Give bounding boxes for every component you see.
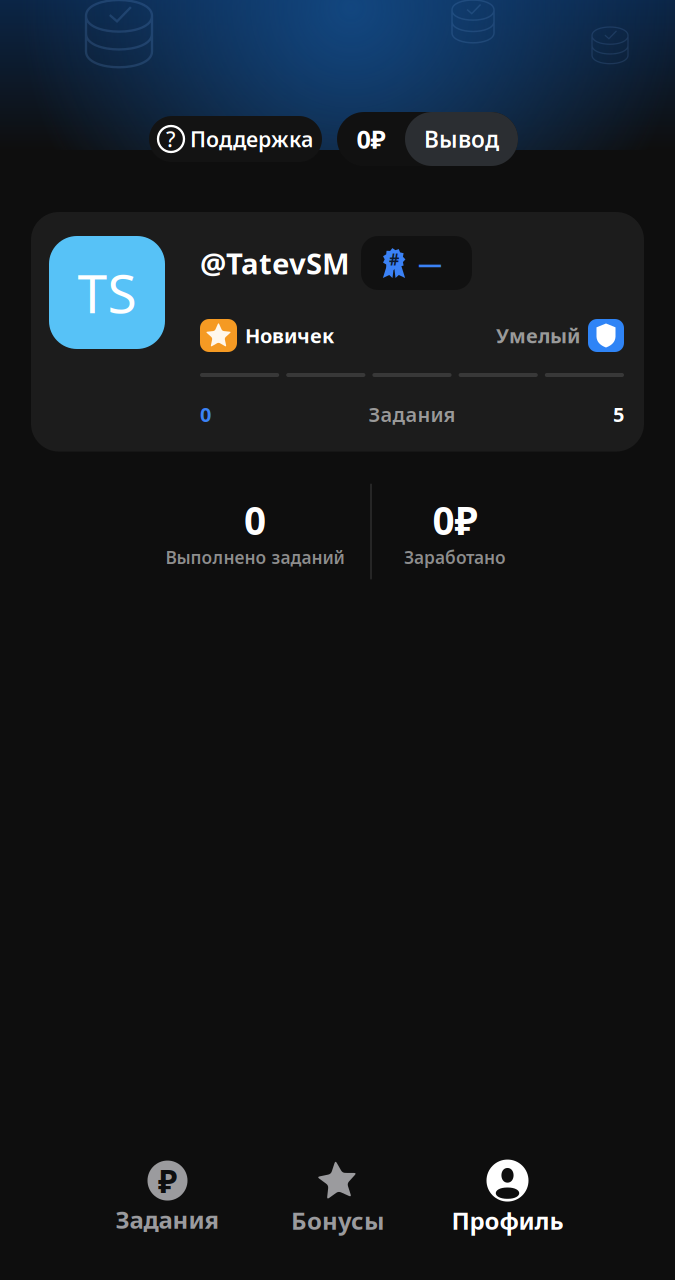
staticText: 0 xyxy=(200,401,211,428)
staticText: Бонусы xyxy=(291,1205,384,1236)
staticText: Выполнено заданий xyxy=(165,546,344,569)
staticText: @TatevSM xyxy=(200,243,350,282)
staticText: TS xyxy=(77,257,136,328)
staticText: Заработано xyxy=(404,546,506,569)
button[interactable]: Профиль xyxy=(422,1164,592,1232)
staticText: Задания xyxy=(115,1204,219,1235)
button[interactable]: Бонусы xyxy=(252,1164,422,1232)
staticText: Профиль xyxy=(451,1205,563,1236)
staticText: ₽ xyxy=(158,1159,177,1202)
staticText: 0₽ xyxy=(356,122,385,156)
staticText: # xyxy=(389,249,399,270)
staticText: — xyxy=(418,247,442,279)
staticText: Новичек xyxy=(245,322,334,349)
staticText: Поддержка xyxy=(190,125,313,153)
staticText: ? xyxy=(166,125,176,153)
button[interactable]: Вывод xyxy=(405,112,518,166)
staticText: 0₽ xyxy=(432,494,477,546)
staticText: Задания xyxy=(368,401,455,428)
staticText: Вывод xyxy=(424,124,499,154)
staticText: Умелый xyxy=(496,322,580,349)
button[interactable]: ₽ xyxy=(82,1164,252,1232)
staticText: 0 xyxy=(244,494,266,546)
button[interactable]: ? xyxy=(149,116,322,162)
staticText: 5 xyxy=(613,401,624,428)
